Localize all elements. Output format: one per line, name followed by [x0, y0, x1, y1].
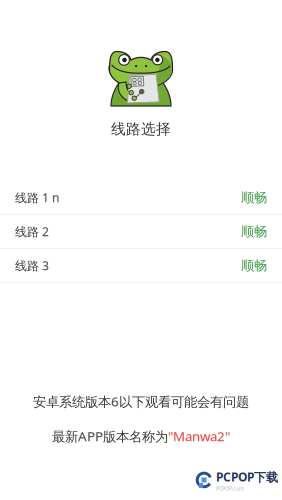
staticText: 安卓系统版本6以下观看可能会有问题: [33, 393, 249, 410]
staticText: 最新APP版本名称为: [52, 427, 168, 445]
staticText: 线路 3: [15, 257, 49, 273]
staticText: 线路 2: [15, 223, 49, 239]
staticText: PCPOP.com: [216, 485, 244, 492]
button[interactable]: 线路 1 n: [0, 181, 282, 215]
staticText: PCPOP下载: [216, 469, 278, 485]
staticText: 线路 1 n: [15, 189, 59, 205]
staticText: 顺畅: [241, 189, 267, 206]
staticText: 顺畅: [241, 257, 267, 274]
staticText: 线路选择: [111, 120, 171, 138]
staticText: 顺畅: [241, 223, 267, 240]
button[interactable]: 线路 3: [0, 249, 282, 283]
button[interactable]: 线路 2: [0, 215, 282, 249]
staticText: "Manwa2": [168, 427, 230, 445]
